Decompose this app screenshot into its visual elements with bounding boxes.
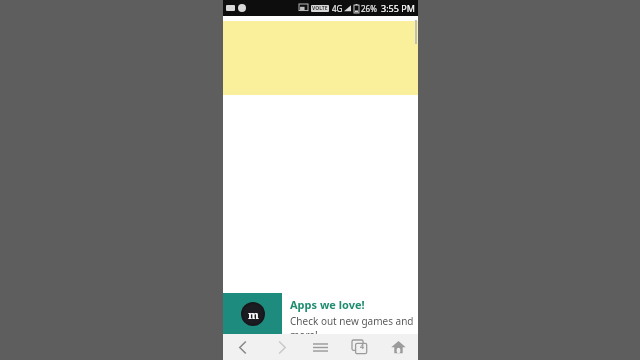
staticText: 4 [360,342,365,352]
staticText: more! [290,328,318,334]
staticText: 26% [361,3,377,14]
button[interactable]: Tabs [340,334,379,360]
staticText: VOLTE [312,5,328,12]
button[interactable]: m [223,293,418,334]
button[interactable]: Forward [262,334,301,360]
staticText: 4G [332,3,343,14]
staticText: Apps we love! [290,297,365,312]
staticText: Check out new games and [290,314,414,328]
button[interactable]: Back [223,334,262,360]
button[interactable]: Menu [301,334,340,360]
button[interactable]: Home [379,334,418,360]
staticText: 3:55 PM [381,2,415,14]
staticText: m [248,307,259,322]
